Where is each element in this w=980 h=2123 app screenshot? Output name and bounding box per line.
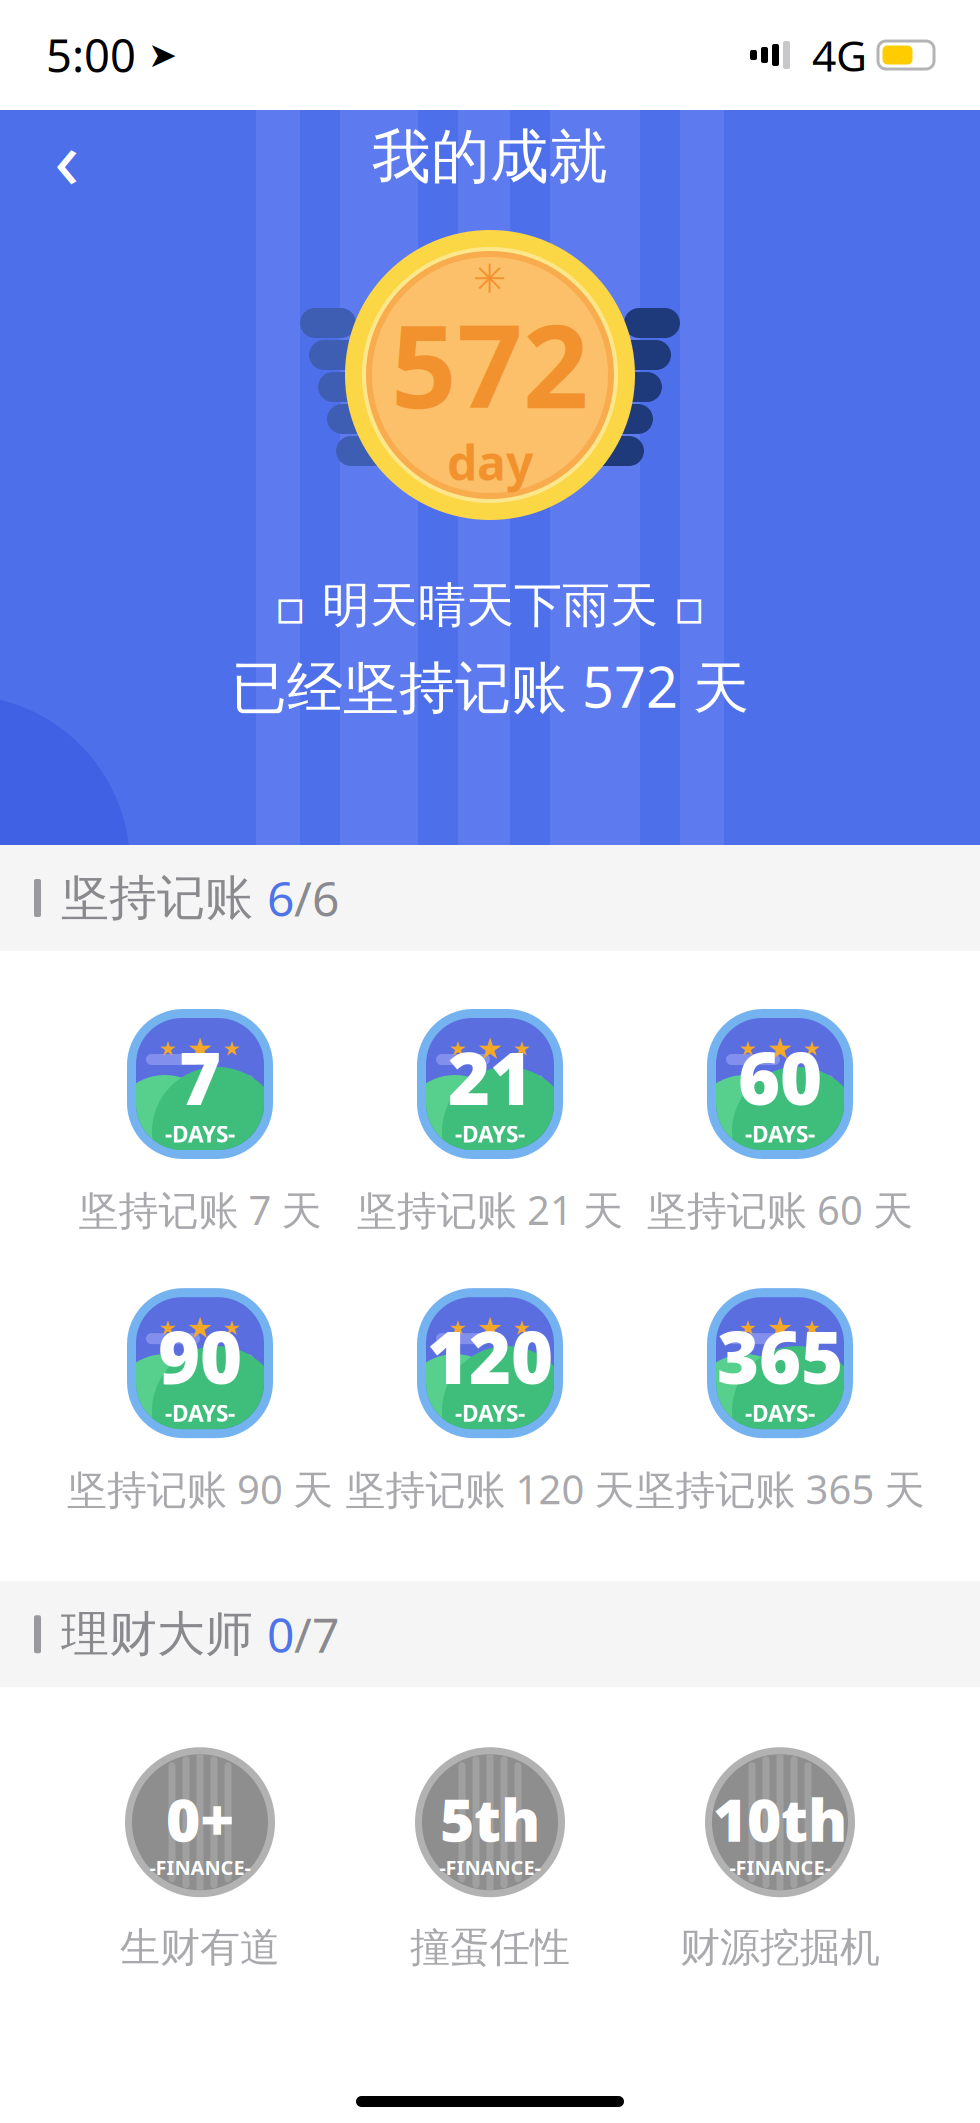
button[interactable]: Back — [22, 112, 112, 202]
button[interactable]: ★ — [345, 1288, 635, 1515]
staticText: 坚持记账 365 天 — [635, 1462, 924, 1515]
staticText: 财源挖掘机 — [680, 1923, 880, 1972]
staticText: 理财大师 — [61, 1605, 267, 1664]
staticText: 0+ — [166, 1780, 234, 1858]
staticText: 60 — [738, 1029, 822, 1125]
staticText: 坚持记账 120 天 — [345, 1462, 634, 1515]
staticText: 撞蛋任性 — [410, 1923, 570, 1972]
button[interactable]: ★ — [345, 1009, 635, 1236]
staticText: ✳ — [473, 256, 507, 302]
staticText: 572 — [391, 288, 589, 440]
staticText: 7 — [179, 1029, 221, 1125]
staticText: 365 — [717, 1308, 843, 1404]
staticText: -DAYS- — [455, 1119, 525, 1149]
staticText: 坚持记账 7 天 — [78, 1183, 321, 1236]
staticText: ★ — [223, 1316, 241, 1339]
staticText: ★ — [767, 1032, 793, 1065]
staticText: ★ — [449, 1316, 467, 1339]
staticText: 4G — [790, 27, 878, 83]
button[interactable]: ★ — [55, 1288, 345, 1515]
staticText: ★ — [187, 1311, 213, 1344]
staticText: ▫ 明天晴天下雨天 ▫ — [274, 576, 706, 635]
staticText: ★ — [159, 1037, 177, 1060]
staticText: ★ — [803, 1037, 821, 1060]
staticText: -DAYS- — [745, 1119, 815, 1149]
staticText: ★ — [739, 1037, 757, 1060]
staticText: 坚持记账 60 天 — [647, 1183, 913, 1236]
button[interactable]: ★ — [635, 1009, 925, 1236]
staticText: -FINANCE- — [439, 1854, 540, 1880]
staticText: ★ — [803, 1316, 821, 1339]
staticText: ★ — [159, 1316, 177, 1339]
staticText: ★ — [449, 1037, 467, 1060]
staticText: 90 — [158, 1308, 242, 1404]
staticText: 坚持记账 21 天 — [357, 1183, 623, 1236]
staticText: /7 — [294, 1602, 339, 1666]
staticText: -FINANCE- — [149, 1854, 250, 1880]
staticText: 120 — [427, 1308, 553, 1404]
staticText: ★ — [513, 1037, 531, 1060]
staticText: ➤ — [136, 35, 177, 75]
staticText: 坚持记账 90 天 — [67, 1462, 333, 1515]
button[interactable]: 10th — [635, 1739, 925, 1972]
staticText: 6 — [267, 866, 294, 930]
staticText: 5th — [440, 1780, 540, 1858]
staticText: -DAYS- — [455, 1398, 525, 1428]
staticText: ★ — [513, 1316, 531, 1339]
staticText: 生财有道 — [120, 1923, 280, 1972]
staticText: 我的成就 — [372, 121, 608, 193]
staticText: 已经坚持记账 572 天 — [231, 649, 749, 723]
staticText: ★ — [739, 1316, 757, 1339]
staticText: -DAYS- — [745, 1398, 815, 1428]
staticText: -DAYS- — [165, 1398, 235, 1428]
staticText: 5:00 — [46, 25, 136, 85]
staticText: -FINANCE- — [729, 1854, 830, 1880]
staticText: 0 — [267, 1602, 294, 1666]
staticText: 21 — [448, 1029, 532, 1125]
staticText: ★ — [477, 1032, 503, 1065]
button[interactable]: ★ — [635, 1288, 925, 1515]
staticText: ★ — [767, 1311, 793, 1344]
staticText: /6 — [294, 866, 339, 930]
button[interactable]: ★ — [55, 1009, 345, 1236]
staticText: ‹ — [54, 102, 80, 212]
button[interactable]: 5th — [345, 1739, 635, 1972]
staticText: day — [447, 430, 533, 494]
staticText: ★ — [187, 1032, 213, 1065]
staticText: 10th — [713, 1780, 847, 1858]
staticText: ★ — [223, 1037, 241, 1060]
staticText: ★ — [477, 1311, 503, 1344]
staticText: 坚持记账 — [61, 868, 267, 927]
staticText: -DAYS- — [165, 1119, 235, 1149]
button[interactable]: 0+ — [55, 1739, 345, 1972]
